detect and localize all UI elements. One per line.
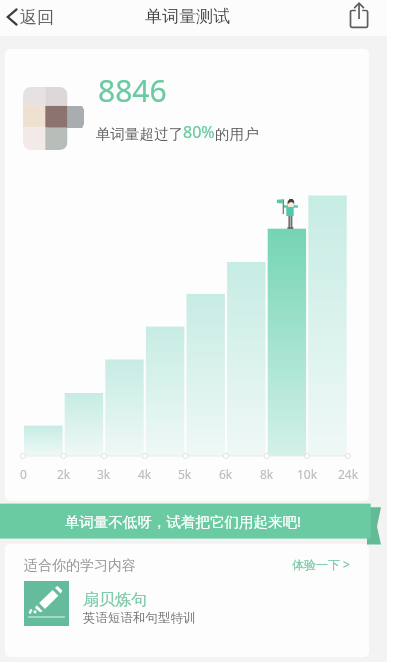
button[interactable]: Share bbox=[345, 2, 375, 32]
staticText: 3k bbox=[97, 466, 111, 482]
staticText: 单词量测试 bbox=[145, 6, 230, 27]
staticText: 适合你的学习内容 bbox=[24, 557, 136, 575]
staticText: 0 bbox=[20, 466, 27, 482]
button[interactable]: 体验一下 > bbox=[281, 552, 361, 576]
staticText: 8k bbox=[260, 466, 274, 482]
staticText: 扇贝炼句 bbox=[83, 590, 147, 610]
button[interactable]: 返回 bbox=[2, 1, 66, 33]
staticText: 5k bbox=[178, 466, 192, 482]
staticText: 4k bbox=[138, 466, 152, 482]
staticText: 10k bbox=[297, 466, 318, 482]
staticText: 单词量超过了 bbox=[96, 125, 183, 143]
staticText: 80% bbox=[183, 121, 215, 143]
staticText: 8846 bbox=[98, 70, 167, 111]
staticText: 英语短语和句型特训 bbox=[83, 610, 196, 626]
staticText: 单词量不低呀，试着把它们用起来吧! bbox=[65, 511, 301, 531]
staticText: 体验一下 > bbox=[292, 556, 350, 572]
staticText: 返回 bbox=[20, 7, 54, 28]
staticText: 2k bbox=[57, 466, 71, 482]
staticText: 的用户 bbox=[215, 125, 259, 143]
button[interactable]: 扇贝炼句 bbox=[5, 574, 369, 644]
staticText: 24k bbox=[338, 466, 359, 482]
staticText: 6k bbox=[219, 466, 233, 482]
